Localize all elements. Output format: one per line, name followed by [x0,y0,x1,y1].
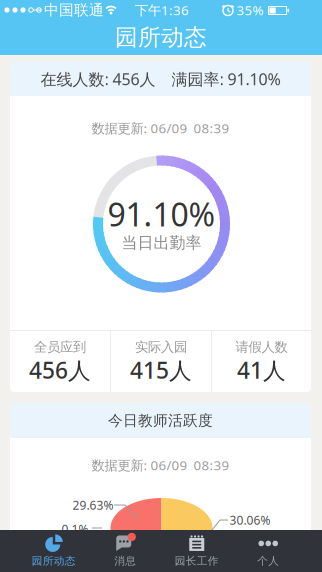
staticText: 30.06% [229,512,270,528]
staticText: 实际入园 [135,339,187,355]
staticText: 消息 [114,554,136,567]
staticText: 个人 [257,554,279,567]
staticText: 456人 [29,355,91,385]
staticText: 全员应到 [34,339,86,355]
staticText: 请假人数 [235,339,287,355]
staticText: 在线人数: 456人 [40,68,155,90]
button[interactable]: 园长工作 [161,530,232,572]
staticText: 41人 [237,355,286,385]
staticText: 35% [236,1,263,19]
staticText: 91.10% [107,193,215,235]
staticText: 当日出勤率 [121,233,201,253]
staticText: 园所动态 [115,24,207,51]
button[interactable]: 消息 [89,530,161,572]
staticText: 中国联通 [44,1,104,19]
staticText: 29.63% [72,497,113,513]
staticText: 园长工作 [175,554,219,567]
staticText: 数据更新: 06/09 08:39 [91,456,229,474]
staticText: 园所动态 [32,554,76,567]
staticText: 今日教师活跃度 [108,411,213,429]
button[interactable]: 个人 [232,530,304,572]
button[interactable]: 园所动态 [18,530,89,572]
staticText: 数据更新: 06/09 08:39 [91,119,229,137]
staticText: 满园率: 91.10% [171,68,280,90]
staticText: 下午1:36 [135,1,189,19]
staticText: 415人 [130,355,192,385]
staticText: 0.1% [61,521,88,537]
